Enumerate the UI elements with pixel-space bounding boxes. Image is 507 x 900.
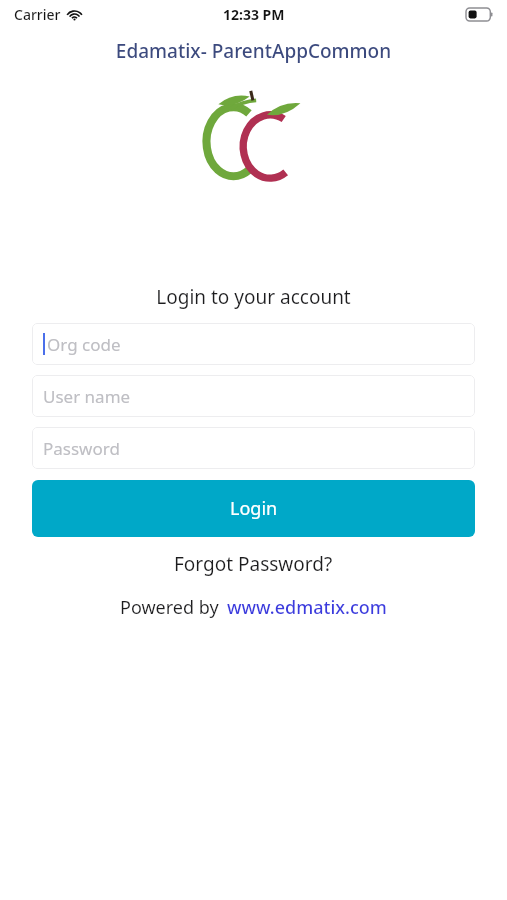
staticText: Login to your account [0,284,507,310]
button[interactable]: www.edmatix.com [227,592,387,623]
staticText: www.edmatix.com [227,595,387,620]
staticText: Edamatix- ParentAppCommon [0,38,507,64]
staticText: Powered by [120,595,219,620]
staticText: Carrier [14,5,61,24]
staticText: User name [43,385,131,408]
button[interactable]: Forgot Password? [162,548,345,580]
staticText: Org code [47,333,121,356]
button[interactable]: User name [32,375,475,417]
staticText: Password [43,437,120,460]
staticText: 12:33 PM [223,5,285,24]
button[interactable]: Org code [32,323,475,365]
button[interactable]: Password [32,427,475,469]
button[interactable]: Login [32,480,475,537]
staticText: Forgot Password? [174,551,333,577]
staticText: Login [230,496,278,521]
